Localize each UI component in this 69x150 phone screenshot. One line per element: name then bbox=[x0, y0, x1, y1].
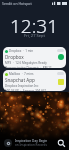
button[interactable]: Preview bbox=[58, 79, 64, 85]
staticText: Dropbox · 1 min bbox=[9, 49, 34, 53]
staticText: Fri, 27 Sept bbox=[24, 33, 45, 38]
button[interactable]: Answer bbox=[58, 54, 64, 60]
staticText: Snapchat App bbox=[5, 77, 35, 83]
staticText: Mailbox · 7 mins bbox=[9, 72, 34, 76]
button[interactable]: Mailbox · 7 mins bbox=[3, 70, 66, 91]
button[interactable]: Now playing bbox=[4, 139, 12, 147]
staticText: 12:31 bbox=[10, 13, 59, 39]
staticText: Demonstrative Dynamic · RM 12 bbox=[5, 66, 52, 68]
button[interactable]: Dropbox · 1 min bbox=[3, 47, 66, 68]
staticText: 100.94 KP · Samsun SM-A31 bbox=[5, 89, 47, 91]
button[interactable]: Search bbox=[56, 138, 66, 148]
staticText: Sendit on Hotspot bbox=[2, 1, 32, 6]
staticText: on Inspiration Records bbox=[15, 143, 47, 147]
staticText: Dropbox Inspiration Inc bbox=[5, 84, 39, 88]
staticText: Inspiration Day Begin bbox=[15, 139, 48, 143]
staticText: MP3 · 12.6 Megabytes Ready bbox=[5, 61, 47, 65]
staticText: Dropbox bbox=[5, 54, 24, 60]
